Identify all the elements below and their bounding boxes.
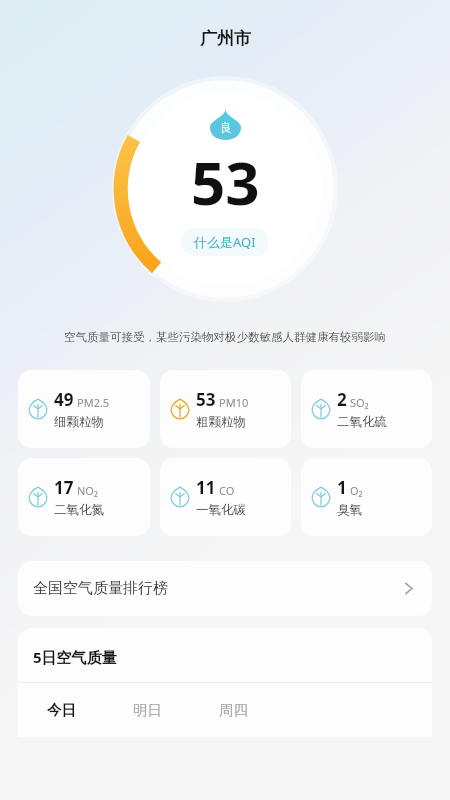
staticText: 细颗粒物 bbox=[54, 414, 104, 430]
staticText: 1 bbox=[337, 476, 347, 499]
button[interactable]: 周四 bbox=[190, 683, 276, 737]
other: 进入全国空气质量排行榜 bbox=[400, 580, 417, 597]
staticText: 广州市 bbox=[200, 28, 251, 49]
staticText: 49 bbox=[54, 388, 74, 411]
staticText: 什么是AQI bbox=[194, 233, 256, 251]
staticText: SO₂ bbox=[350, 395, 369, 410]
staticText: 全国空气质量排行榜 bbox=[33, 579, 168, 598]
staticText: PM2.5 bbox=[77, 395, 110, 410]
staticText: 粗颗粒物 bbox=[196, 414, 246, 430]
staticText: 5日空气质量 bbox=[33, 647, 117, 667]
staticText: 二氧化硫 bbox=[337, 414, 387, 430]
staticText: PM10 bbox=[219, 395, 249, 410]
staticText: 二氧化氮 bbox=[54, 502, 104, 518]
button[interactable]: 53 bbox=[160, 370, 291, 448]
button[interactable]: 1 bbox=[301, 458, 432, 536]
staticText: 臭氧 bbox=[337, 502, 362, 518]
staticText: 一氧化碳 bbox=[196, 502, 246, 518]
button[interactable]: 明日 bbox=[104, 683, 190, 737]
button[interactable]: 全国空气质量排行榜 bbox=[18, 561, 432, 616]
staticText: 17 bbox=[54, 476, 74, 499]
staticText: O₂ bbox=[350, 483, 363, 498]
staticText: 周四 bbox=[219, 701, 248, 719]
button[interactable]: 什么是AQI bbox=[181, 228, 269, 256]
button[interactable]: 17 bbox=[18, 458, 150, 536]
staticText: 11 bbox=[196, 476, 216, 499]
staticText: 良 bbox=[220, 120, 232, 135]
button[interactable]: 今日 bbox=[18, 683, 104, 737]
staticText: 空气质量可接受，某些污染物对极少数敏感人群健康有较弱影响 bbox=[64, 330, 386, 344]
staticText: NO₂ bbox=[77, 483, 98, 498]
staticText: 明日 bbox=[133, 701, 162, 719]
staticText: 2 bbox=[337, 388, 347, 411]
button[interactable]: 11 bbox=[160, 458, 291, 536]
staticText: 53 bbox=[196, 388, 216, 411]
staticText: 53 bbox=[191, 141, 260, 223]
staticText: 今日 bbox=[47, 701, 76, 719]
button[interactable]: 2 bbox=[301, 370, 432, 448]
button[interactable]: 49 bbox=[18, 370, 150, 448]
staticText: CO bbox=[219, 483, 235, 498]
